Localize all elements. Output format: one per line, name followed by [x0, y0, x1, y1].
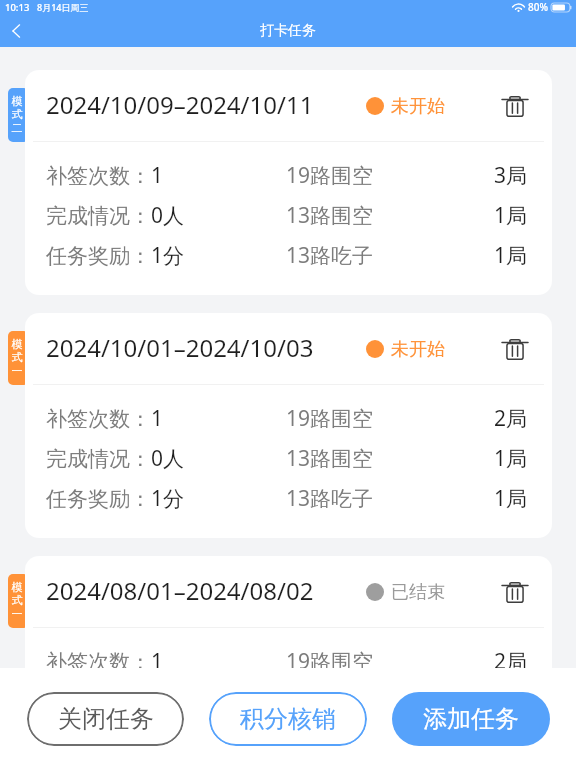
staticText: 完成情况： — [46, 203, 151, 229]
staticText: 1 — [151, 647, 164, 668]
staticText: 1分 — [151, 241, 185, 270]
button[interactable]: 2024/10/01–2024/10/03 — [25, 313, 552, 538]
staticText: 模式一 — [11, 337, 23, 379]
staticText: 2024/08/01–2024/08/02 — [46, 574, 314, 607]
staticText: 1局 — [494, 484, 528, 513]
staticText: 2024/10/09–2024/10/11 — [46, 88, 314, 121]
button[interactable]: Back — [0, 14, 32, 47]
staticText: 19路围空 — [286, 161, 374, 190]
staticText: 打卡任务 — [260, 22, 316, 40]
staticText: 0人 — [151, 201, 185, 230]
staticText: 未开始 — [391, 338, 445, 361]
staticText: 补签次数： — [46, 649, 151, 668]
staticText: 已结束 — [391, 581, 445, 604]
staticText: 19路围空 — [286, 404, 374, 433]
staticText: 补签次数： — [46, 163, 151, 189]
staticText: 8月14日周三 — [37, 1, 89, 13]
button[interactable]: 积分核销 — [209, 692, 367, 746]
button[interactable]: Delete — [498, 89, 532, 123]
staticText: 3局 — [494, 161, 528, 190]
staticText: 13路吃子 — [286, 484, 374, 513]
staticText: 添加任务 — [423, 704, 519, 734]
staticText: 1局 — [494, 201, 528, 230]
staticText: 1局 — [494, 241, 528, 270]
staticText: 关闭任务 — [58, 704, 154, 734]
staticText: 模式二 — [11, 94, 23, 136]
staticText: 19路围空 — [286, 647, 374, 668]
staticText: 1分 — [151, 484, 185, 513]
button[interactable]: Delete — [498, 332, 532, 366]
staticText: 1 — [151, 161, 164, 190]
staticText: 1局 — [494, 444, 528, 473]
staticText: 任务奖励： — [46, 243, 151, 269]
staticText: 13路围空 — [286, 444, 374, 473]
button[interactable]: 2024/10/09–2024/10/11 — [25, 70, 552, 295]
staticText: 2局 — [494, 404, 528, 433]
staticText: 2024/10/01–2024/10/03 — [46, 331, 314, 364]
button[interactable]: 添加任务 — [392, 692, 550, 746]
staticText: 13路吃子 — [286, 241, 374, 270]
button[interactable]: 关闭任务 — [27, 692, 184, 746]
staticText: 10:13 — [5, 1, 30, 14]
button[interactable]: 2024/08/01–2024/08/02 — [25, 556, 552, 668]
staticText: 完成情况： — [46, 446, 151, 472]
staticText: 13路围空 — [286, 201, 374, 230]
staticText: 2局 — [494, 647, 528, 668]
staticText: 补签次数： — [46, 406, 151, 432]
staticText: 80% — [528, 0, 548, 14]
staticText: 任务奖励： — [46, 486, 151, 512]
button[interactable]: Delete — [498, 575, 532, 609]
staticText: 模式一 — [11, 580, 23, 622]
staticText: 积分核销 — [240, 704, 336, 734]
staticText: 1 — [151, 404, 164, 433]
staticText: 0人 — [151, 444, 185, 473]
staticText: 未开始 — [391, 95, 445, 118]
